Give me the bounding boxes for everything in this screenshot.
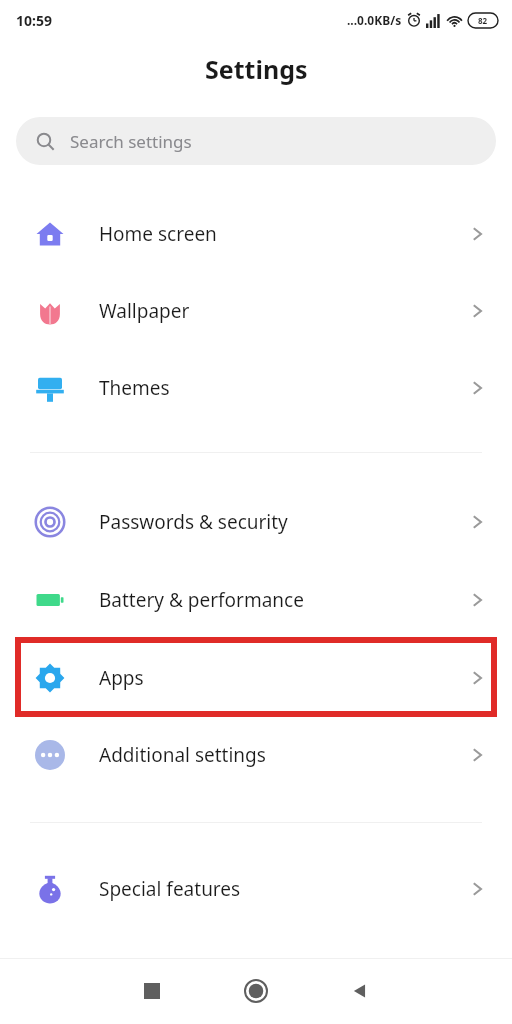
- button[interactable]: Special features: [0, 851, 512, 927]
- staticText: Apps: [99, 665, 144, 691]
- staticText: ...0.0KB/s: [347, 12, 402, 28]
- staticText: Special features: [99, 876, 241, 902]
- button[interactable]: Passwords & security: [0, 484, 512, 560]
- button[interactable]: Home screen: [0, 196, 512, 272]
- button[interactable]: Home: [232, 967, 280, 1015]
- staticText: Battery & performance: [99, 587, 304, 613]
- button[interactable]: Recents: [128, 967, 176, 1015]
- staticText: Passwords & security: [99, 509, 288, 535]
- button[interactable]: Additional settings: [0, 717, 512, 793]
- button[interactable]: Apps: [0, 640, 512, 716]
- button[interactable]: Wallpaper: [0, 273, 512, 349]
- staticText: Settings: [205, 52, 308, 86]
- button[interactable]: Search settings: [16, 117, 496, 165]
- staticText: Themes: [99, 375, 170, 401]
- staticText: Wallpaper: [99, 298, 190, 324]
- button[interactable]: Themes: [0, 350, 512, 426]
- staticText: Home screen: [99, 221, 217, 247]
- staticText: Search settings: [70, 130, 192, 153]
- button[interactable]: Back: [336, 967, 384, 1015]
- button[interactable]: Battery & performance: [0, 562, 512, 638]
- staticText: 10:59: [16, 11, 52, 30]
- staticText: 82: [478, 15, 488, 26]
- staticText: Additional settings: [99, 742, 266, 768]
